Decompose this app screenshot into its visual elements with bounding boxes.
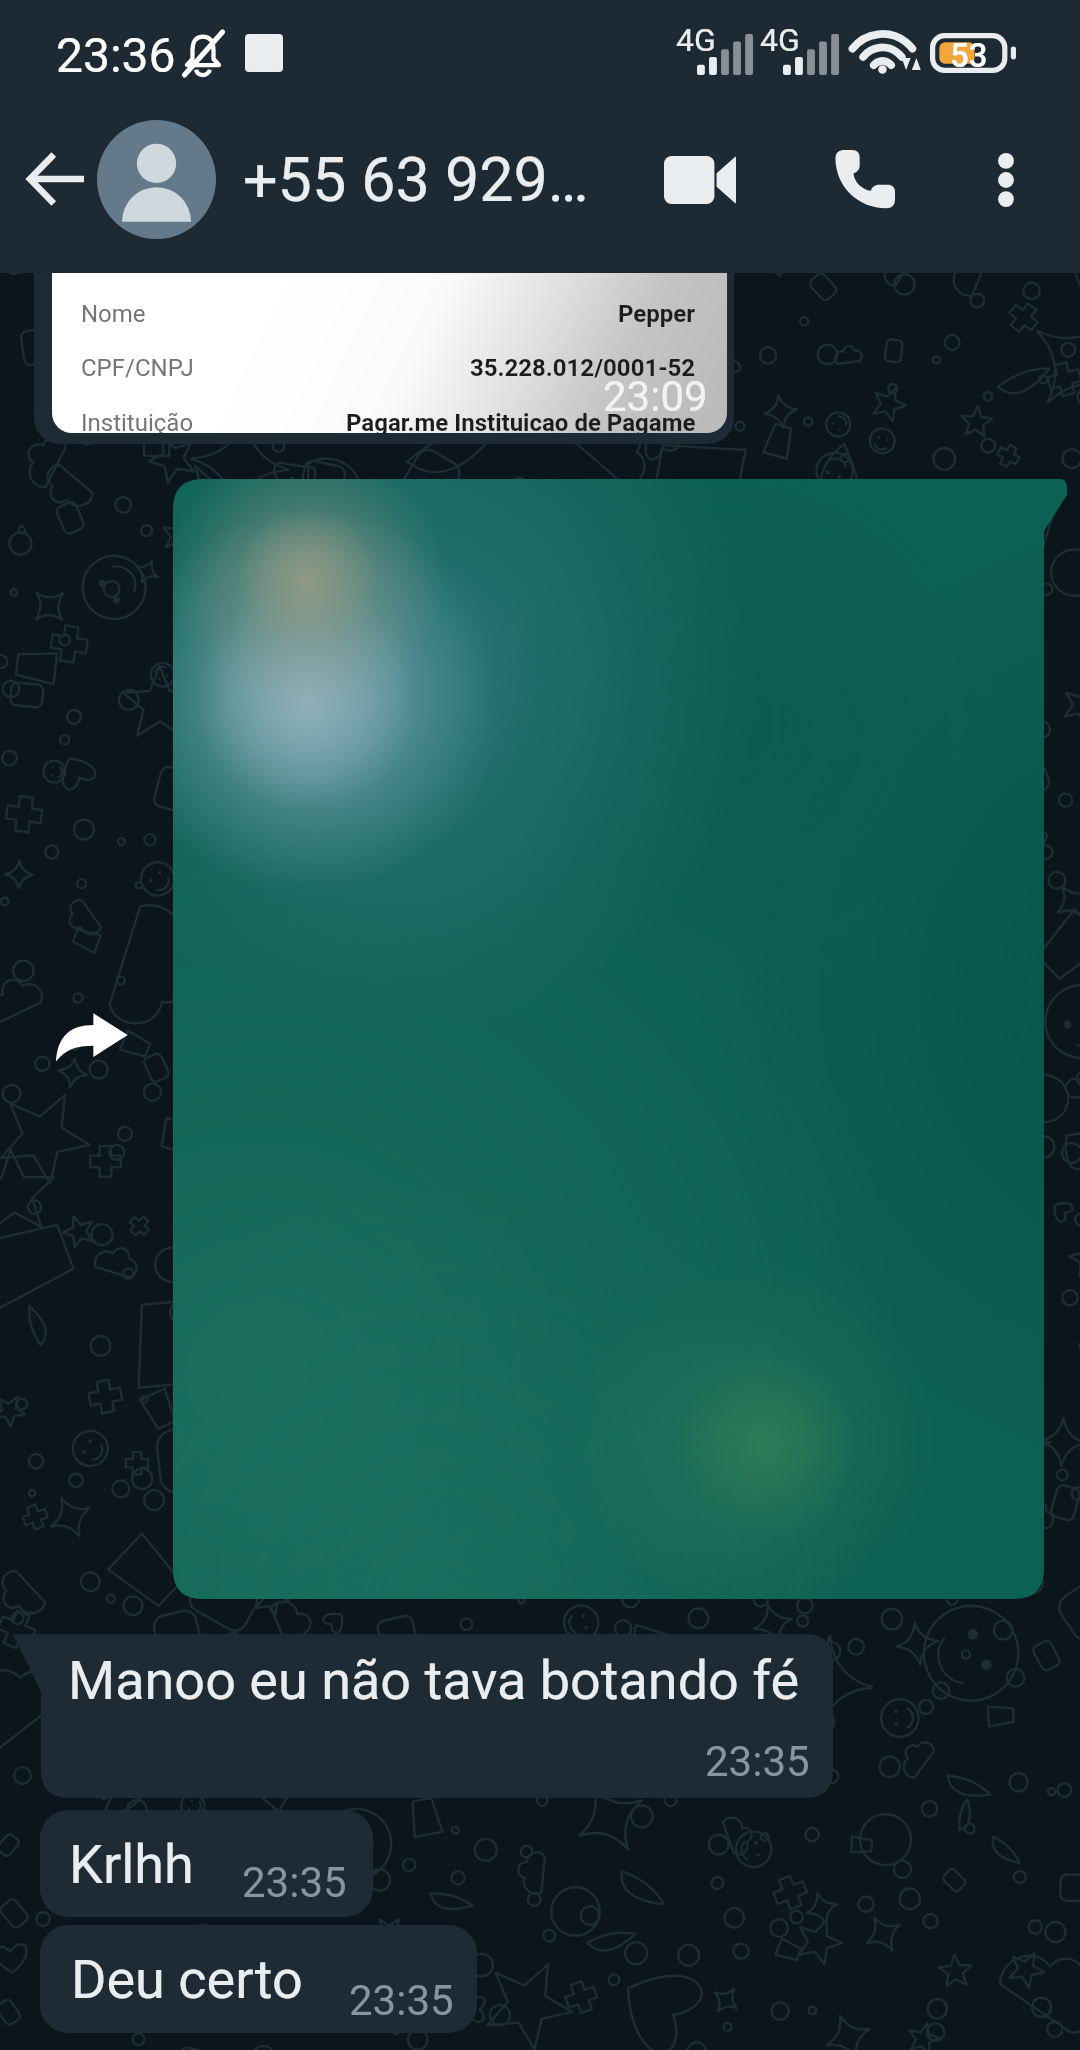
staticText: 4G (676, 21, 716, 59)
staticText: Manoo eu não tava botando fé (68, 1649, 800, 1712)
staticText: 23:35 (705, 1737, 810, 1786)
staticText: 23:36 (56, 27, 176, 83)
staticText: 23:35 (242, 1858, 347, 1907)
staticText: 53 (950, 36, 988, 75)
button[interactable]: Krlhh (40, 1810, 373, 1917)
other: Forwarded message (52, 1000, 130, 1078)
button[interactable]: Manoo eu não tava botando fé (13, 1634, 833, 1798)
button[interactable]: Deu certo (40, 1925, 477, 2033)
button[interactable]: Video call (648, 128, 752, 232)
button[interactable]: +55 63 929… (243, 120, 643, 239)
button[interactable]: Receipt image (34, 120, 734, 444)
button[interactable]: Profile photo (97, 120, 216, 239)
staticText: Nome (81, 300, 146, 328)
staticText: CPF/CNPJ (81, 354, 194, 382)
button[interactable]: More options (954, 128, 1058, 232)
staticText: 35.228.012/0001-52 (470, 354, 696, 382)
button[interactable]: Photo (173, 479, 1067, 1599)
staticText: Krlhh (69, 1833, 194, 1896)
staticText: Pagar.me Instituicao de Pagame (346, 409, 696, 433)
staticText: Pepper (618, 300, 696, 328)
staticText: 23:09 (603, 372, 708, 421)
staticText: 23:35 (349, 1976, 454, 2025)
staticText: Instituição (81, 409, 194, 433)
button[interactable]: Back (8, 132, 102, 226)
staticText: +55 63 929… (243, 144, 589, 215)
staticText: Deu certo (71, 1948, 303, 2011)
button[interactable]: Voice call (812, 128, 916, 232)
staticText: 4G (760, 21, 800, 59)
